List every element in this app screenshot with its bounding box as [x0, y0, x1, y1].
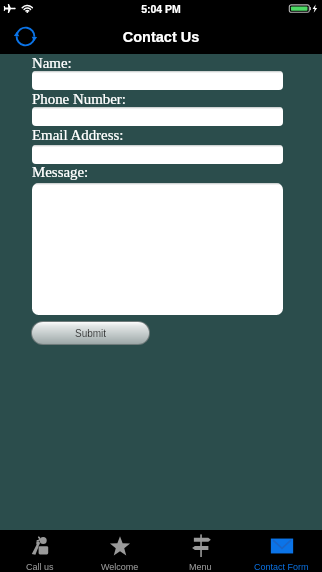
- button[interactable]: Menu: [160, 530, 241, 572]
- staticText: Welcome: [101, 562, 139, 572]
- staticText: Phone Number:: [32, 91, 126, 108]
- staticText: Menu: [189, 562, 212, 572]
- staticText: Name:: [32, 55, 72, 72]
- staticText: Contact Us: [0, 29, 322, 45]
- button[interactable]: Welcome: [80, 530, 160, 572]
- button[interactable]: [32, 107, 283, 126]
- button[interactable]: [32, 145, 283, 164]
- button[interactable]: Submit: [32, 322, 149, 344]
- button[interactable]: [32, 71, 283, 90]
- button[interactable]: Contact Form: [241, 530, 322, 572]
- staticText: Message:: [32, 164, 89, 181]
- button[interactable]: [32, 183, 283, 315]
- staticText: Email Address:: [32, 127, 124, 144]
- button[interactable]: Call us: [0, 530, 80, 572]
- button[interactable]: Refresh: [14, 25, 37, 48]
- staticText: Contact Form: [254, 562, 309, 572]
- staticText: Call us: [26, 562, 54, 572]
- staticText: Submit: [75, 328, 107, 339]
- staticText: 5:04 PM: [0, 3, 322, 15]
